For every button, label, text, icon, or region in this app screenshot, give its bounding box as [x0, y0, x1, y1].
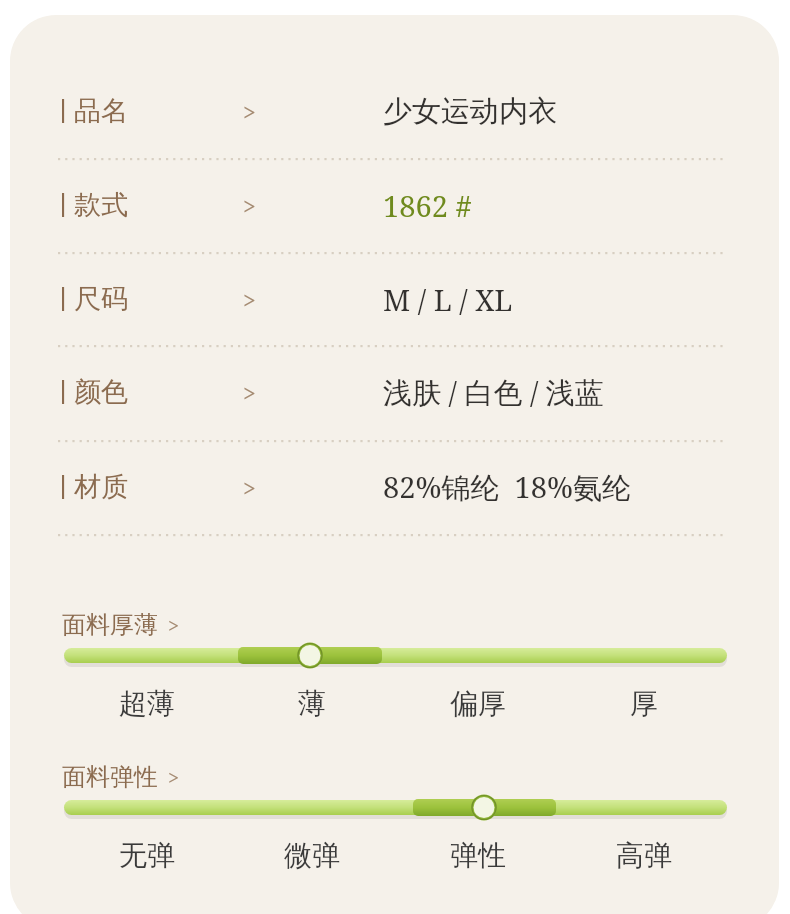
- button[interactable]: 品名: [0, 64, 790, 158]
- staticText: >: [168, 612, 180, 639]
- staticText: 1862 #: [383, 186, 472, 225]
- staticText: 厚: [630, 686, 658, 721]
- staticText: 颜色: [74, 375, 128, 409]
- button[interactable]: 尺码: [0, 252, 790, 346]
- staticText: >: [243, 377, 256, 408]
- button[interactable]: 高弹: [561, 838, 727, 873]
- staticText: 偏厚: [450, 686, 506, 721]
- staticText: 品名: [74, 94, 128, 128]
- button[interactable]: 弹性: [395, 838, 561, 873]
- staticText: 微弹: [284, 838, 340, 873]
- button[interactable]: 偏厚: [395, 686, 561, 721]
- staticText: >: [243, 96, 256, 127]
- staticText: 薄: [298, 686, 326, 721]
- staticText: 尺码: [74, 282, 128, 316]
- button[interactable]: 面料弹性: [62, 762, 180, 792]
- button[interactable]: 面料厚薄: [0, 638, 790, 674]
- staticText: >: [243, 472, 256, 503]
- button[interactable]: 微弹: [229, 838, 395, 873]
- staticText: 材质: [74, 470, 128, 504]
- staticText: 面料厚薄: [62, 610, 158, 640]
- button[interactable]: 超薄: [64, 686, 229, 721]
- staticText: 弹性: [450, 838, 506, 873]
- button[interactable]: 面料厚薄: [62, 610, 180, 640]
- staticText: >: [168, 764, 180, 791]
- staticText: >: [243, 284, 256, 315]
- button[interactable]: 材质: [0, 440, 790, 534]
- staticText: 面料弹性: [62, 762, 158, 792]
- button[interactable]: 厚: [561, 686, 727, 721]
- staticText: >: [243, 190, 256, 221]
- staticText: 82%锦纶 18%氨纶: [383, 467, 631, 507]
- staticText: 超薄: [119, 686, 175, 721]
- staticText: 无弹: [119, 838, 175, 873]
- staticText: 浅肤 / 白色 / 浅蓝: [383, 372, 604, 412]
- button[interactable]: 薄: [229, 686, 395, 721]
- button[interactable]: 颜色: [0, 345, 790, 439]
- staticText: 高弹: [616, 838, 672, 873]
- button[interactable]: 款式: [0, 158, 790, 252]
- button[interactable]: 面料弹性: [0, 790, 790, 826]
- staticText: 少女运动内衣: [383, 93, 557, 130]
- staticText: M / L / XL: [383, 280, 513, 319]
- button[interactable]: 无弹: [64, 838, 229, 873]
- staticText: 款式: [74, 188, 128, 222]
